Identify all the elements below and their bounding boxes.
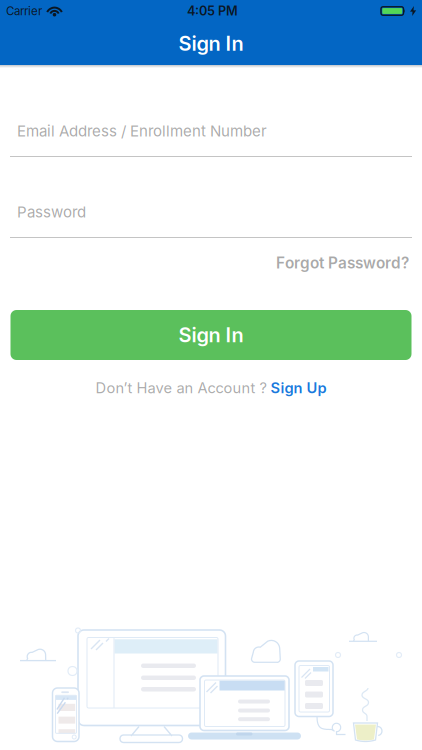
button[interactable]: Sign Up (270, 379, 326, 397)
staticText: Sign In (178, 323, 243, 347)
staticText: Forgot Password? (276, 254, 409, 272)
button[interactable]: Forgot Password? (276, 253, 409, 273)
staticText: Sign In (178, 31, 243, 56)
staticText: Email Address / Enrollment Number (17, 122, 267, 140)
staticText: Sign Up (270, 379, 326, 397)
staticText: Password (17, 203, 86, 221)
button[interactable]: Sign In (10, 310, 411, 360)
staticText: Don’t Have an Account ? (95, 379, 270, 397)
staticText: 4:05 PM (187, 3, 238, 19)
staticText: Carrier (6, 4, 42, 18)
